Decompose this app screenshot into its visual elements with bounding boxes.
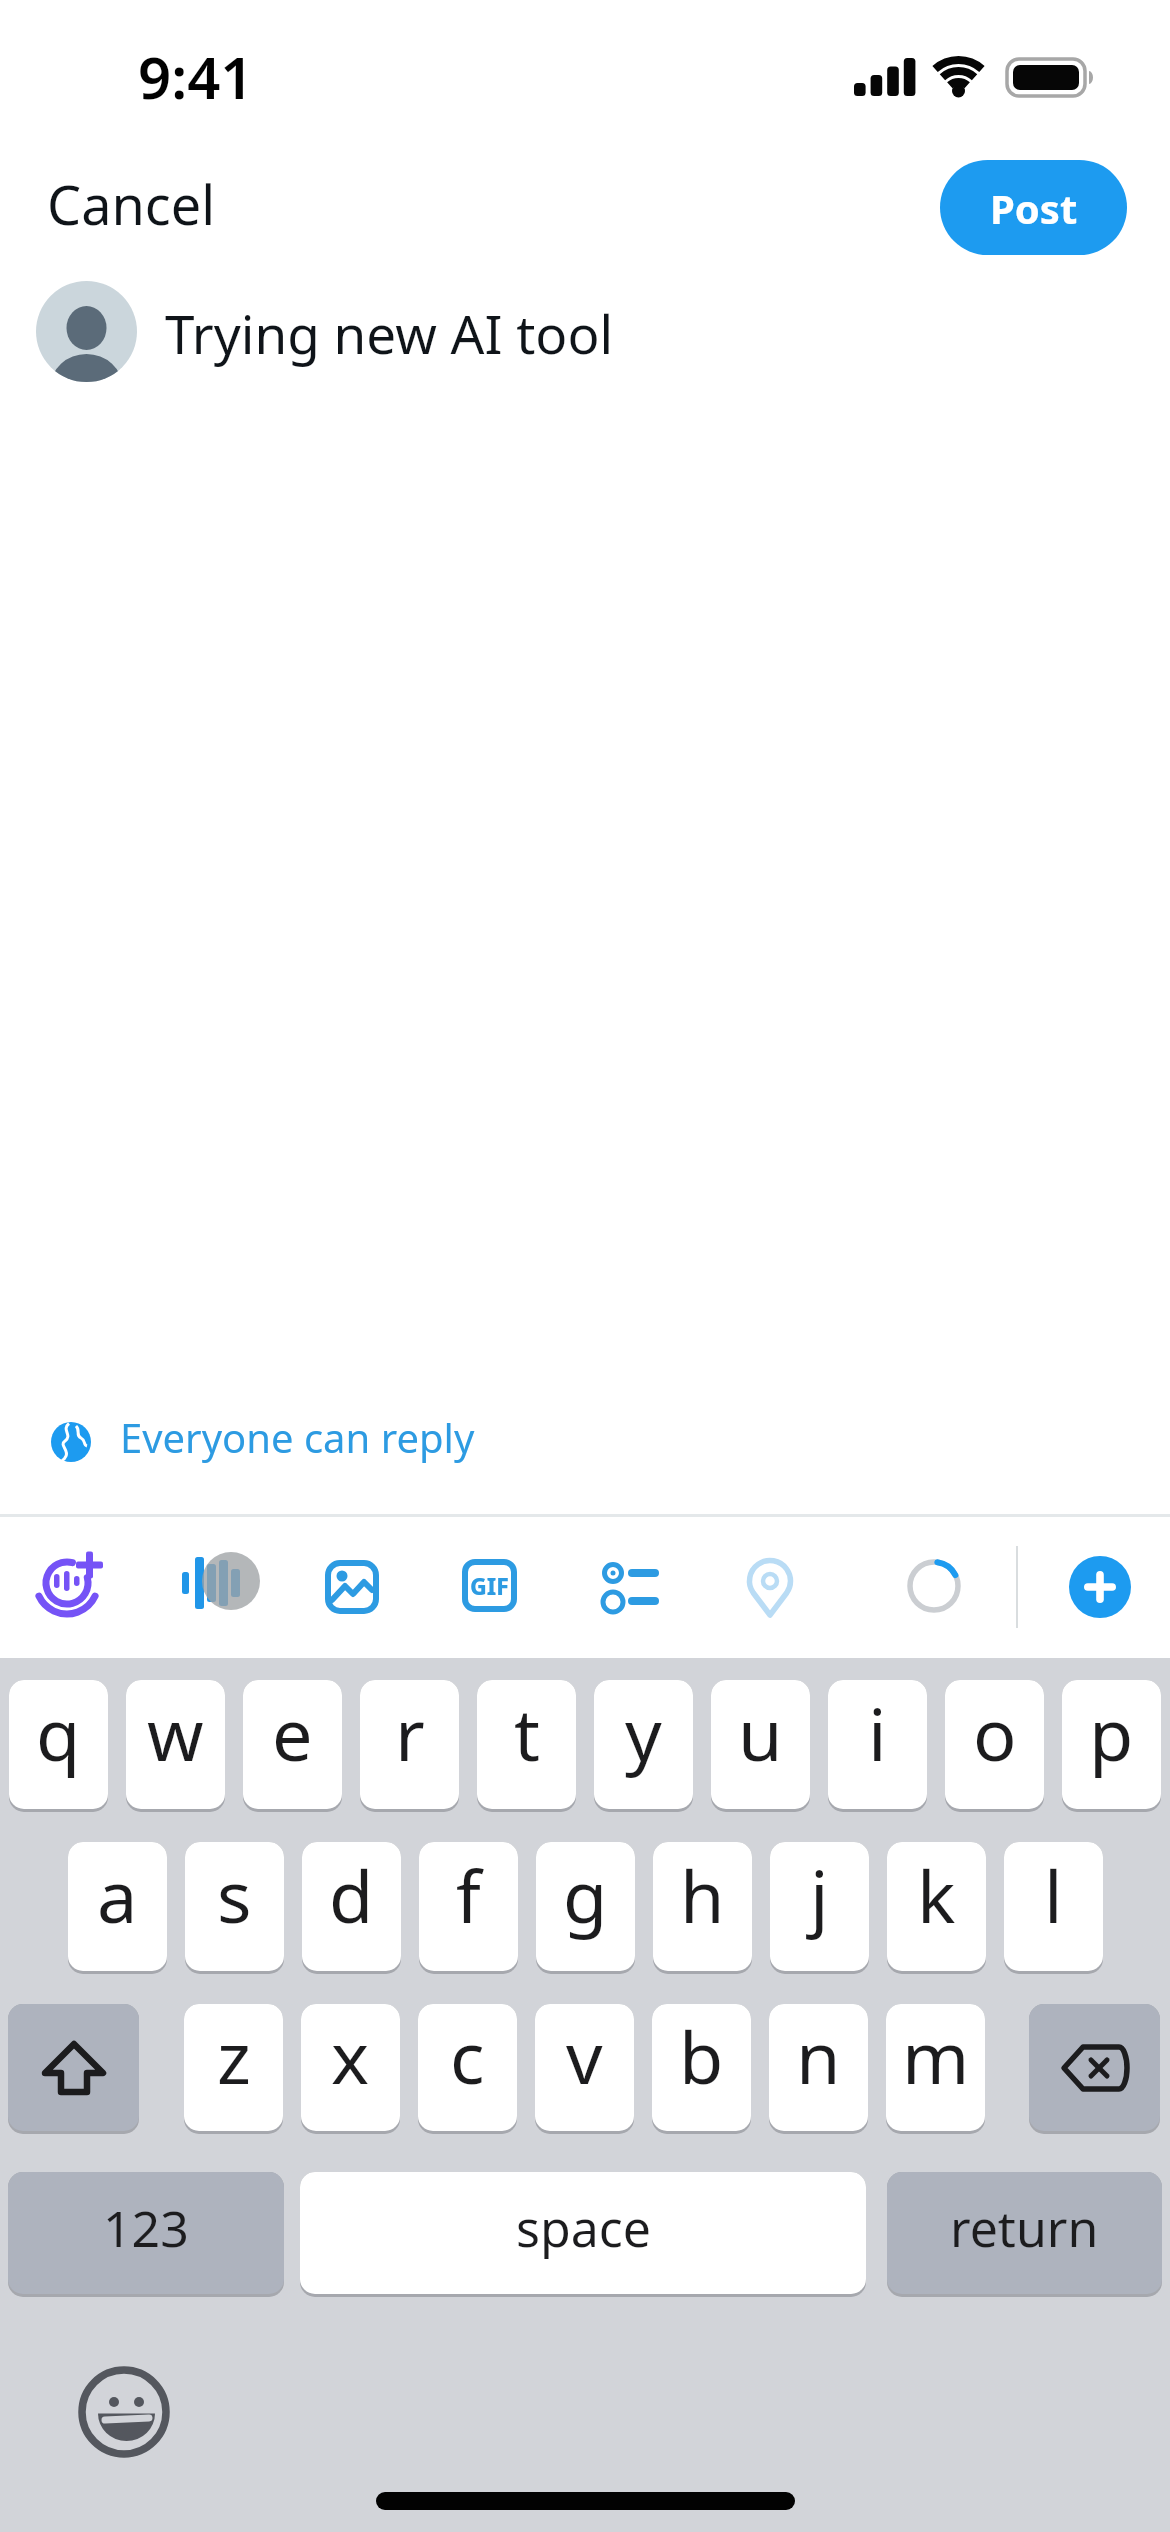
- staticText: b: [679, 2007, 724, 2105]
- staticText: m: [902, 2007, 970, 2105]
- staticText: h: [680, 1846, 725, 1944]
- staticText: f: [456, 1846, 481, 1944]
- button[interactable]: d: [302, 1842, 401, 1971]
- staticText: o: [973, 1684, 1017, 1782]
- staticText: return: [950, 2194, 1099, 2262]
- staticText: GIF: [470, 1570, 509, 1601]
- button[interactable]: [176, 1548, 266, 1618]
- button[interactable]: e: [243, 1680, 342, 1809]
- button[interactable]: k: [887, 1842, 986, 1971]
- staticText: Cancel: [47, 167, 216, 241]
- button[interactable]: a: [68, 1842, 167, 1971]
- button[interactable]: [744, 1557, 798, 1619]
- staticText: w: [147, 1684, 204, 1782]
- button[interactable]: [8, 2004, 139, 2131]
- staticText: v: [566, 2007, 603, 2105]
- staticText: i: [868, 1684, 887, 1782]
- button[interactable]: t: [477, 1680, 576, 1809]
- button[interactable]: c: [418, 2004, 517, 2131]
- staticText: y: [625, 1684, 662, 1782]
- staticText: c: [450, 2007, 485, 2105]
- button[interactable]: GIF: [462, 1559, 517, 1612]
- button[interactable]: g: [536, 1842, 635, 1971]
- button[interactable]: [318, 1553, 382, 1617]
- staticText: q: [36, 1684, 81, 1782]
- button[interactable]: b: [652, 2004, 751, 2131]
- staticText: space: [516, 2194, 651, 2262]
- staticText: Post: [990, 181, 1078, 235]
- button[interactable]: w: [126, 1680, 225, 1809]
- staticText: j: [810, 1846, 829, 1944]
- button[interactable]: u: [711, 1680, 810, 1809]
- staticText: 123: [103, 2194, 189, 2262]
- staticText: a: [97, 1846, 138, 1944]
- button[interactable]: f: [419, 1842, 518, 1971]
- button[interactable]: o: [945, 1680, 1044, 1809]
- staticText: e: [272, 1684, 313, 1782]
- button[interactable]: j: [770, 1842, 869, 1971]
- button[interactable]: q: [9, 1680, 108, 1809]
- button[interactable]: h: [653, 1842, 752, 1971]
- button[interactable]: [1029, 2004, 1160, 2131]
- staticText: u: [738, 1684, 783, 1782]
- staticText: t: [514, 1684, 540, 1782]
- button[interactable]: m: [886, 2004, 985, 2131]
- button[interactable]: Cancel: [40, 160, 220, 250]
- button[interactable]: [33, 1544, 109, 1620]
- staticText: k: [917, 1846, 956, 1944]
- staticText: p: [1089, 1684, 1134, 1782]
- staticText: Everyone can reply: [120, 1410, 475, 1464]
- staticText: s: [217, 1846, 252, 1944]
- button[interactable]: s: [185, 1842, 284, 1971]
- staticText: z: [217, 2007, 251, 2105]
- button[interactable]: Everyone can reply: [40, 1408, 470, 1476]
- button[interactable]: 123: [8, 2172, 284, 2294]
- button[interactable]: y: [594, 1680, 693, 1809]
- button[interactable]: return: [887, 2172, 1162, 2294]
- staticText: d: [329, 1846, 374, 1944]
- button[interactable]: i: [828, 1680, 927, 1809]
- staticText: n: [796, 2007, 841, 2105]
- button[interactable]: Post: [940, 160, 1127, 255]
- staticText: l: [1044, 1846, 1063, 1944]
- button[interactable]: x: [301, 2004, 400, 2131]
- staticText: 9:41: [138, 37, 254, 116]
- button[interactable]: [598, 1558, 664, 1613]
- staticText: Trying new AI tool: [165, 297, 614, 369]
- button[interactable]: [1069, 1556, 1131, 1618]
- staticText: r: [395, 1684, 425, 1782]
- staticText: x: [331, 2007, 370, 2105]
- button[interactable]: space: [300, 2172, 866, 2294]
- button[interactable]: n: [769, 2004, 868, 2131]
- button[interactable]: p: [1062, 1680, 1161, 1809]
- button[interactable]: z: [184, 2004, 283, 2131]
- button[interactable]: l: [1004, 1842, 1103, 1971]
- button[interactable]: v: [535, 2004, 634, 2131]
- button[interactable]: [78, 2366, 170, 2458]
- staticText: g: [563, 1846, 608, 1944]
- button[interactable]: r: [360, 1680, 459, 1809]
